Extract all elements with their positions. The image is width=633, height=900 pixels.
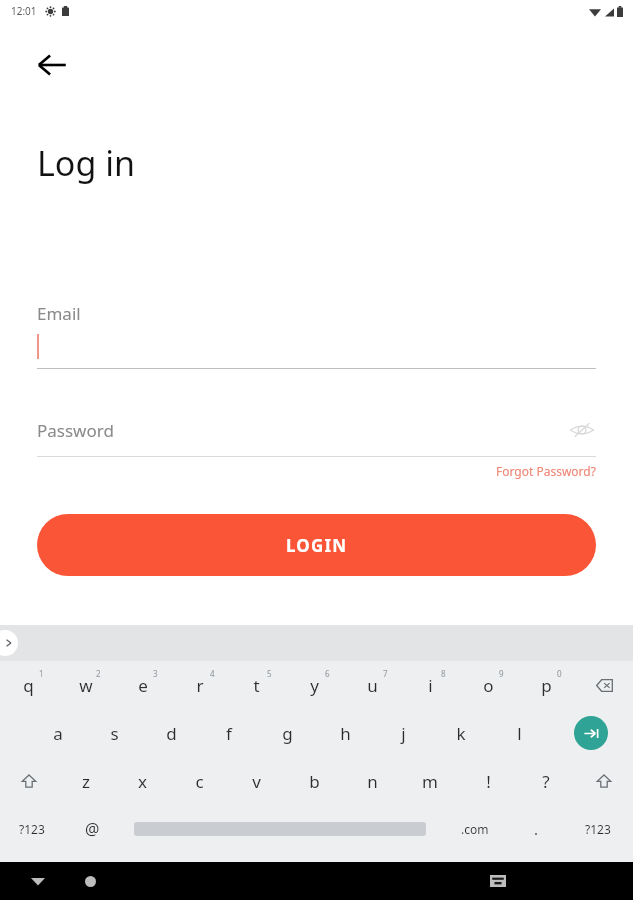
button[interactable]: Shift <box>0 757 57 805</box>
button[interactable]: o <box>459 661 517 709</box>
staticText: g <box>282 722 293 745</box>
staticText: t <box>253 674 260 697</box>
button[interactable]: t <box>228 661 285 709</box>
staticText: o <box>483 674 494 697</box>
button[interactable]: Next <box>548 709 633 757</box>
staticText: 0 <box>557 668 562 679</box>
button[interactable]: .com <box>438 805 511 853</box>
button[interactable]: Forgot Password? <box>496 463 596 479</box>
button[interactable]: c <box>171 757 228 805</box>
button[interactable]: Email <box>37 302 596 369</box>
staticText: ?123 <box>585 821 611 837</box>
staticText: 6 <box>325 668 330 679</box>
staticText: 7 <box>383 668 388 679</box>
staticText: w <box>79 674 93 697</box>
button[interactable]: f <box>200 709 258 757</box>
staticText: p <box>541 674 552 697</box>
staticText: ? <box>542 770 550 793</box>
button[interactable]: p <box>517 661 575 709</box>
button[interactable]: @ <box>64 805 121 853</box>
button[interactable]: Hide keyboard <box>22 865 54 897</box>
staticText: 8 <box>441 668 446 679</box>
button[interactable]: Shift <box>575 757 633 805</box>
staticText: .com <box>461 821 489 837</box>
button[interactable]: More suggestions <box>0 630 18 656</box>
button[interactable]: i <box>401 661 459 709</box>
button[interactable]: Home <box>74 865 106 897</box>
button[interactable]: Show password <box>568 416 596 444</box>
button[interactable]: r <box>171 661 228 709</box>
button[interactable]: m <box>401 757 459 805</box>
staticText: i <box>428 674 433 697</box>
button[interactable]: k <box>432 709 490 757</box>
button[interactable]: u <box>343 661 401 709</box>
staticText: 1 <box>39 668 44 679</box>
button[interactable]: v <box>228 757 285 805</box>
staticText: f <box>226 722 232 745</box>
staticText: ! <box>486 770 491 793</box>
staticText: 5 <box>267 668 272 679</box>
staticText: u <box>367 674 378 697</box>
button[interactable]: Backspace <box>575 661 633 709</box>
staticText: y <box>310 674 319 697</box>
button[interactable]: l <box>490 709 548 757</box>
button[interactable]: Password <box>37 416 596 444</box>
button[interactable]: a <box>29 709 86 757</box>
button[interactable]: y <box>285 661 343 709</box>
staticText: n <box>367 770 378 793</box>
staticText: s <box>110 722 119 745</box>
button[interactable]: Space <box>121 805 438 853</box>
staticText: 2 <box>96 668 101 679</box>
staticText: a <box>53 722 63 745</box>
button[interactable]: Switch keyboard <box>483 866 513 896</box>
staticText: h <box>340 722 351 745</box>
button[interactable]: LOGIN <box>37 514 596 576</box>
button[interactable]: ? <box>517 757 575 805</box>
staticText: r <box>196 674 204 697</box>
button[interactable]: h <box>316 709 374 757</box>
button[interactable]: w <box>57 661 114 709</box>
staticText: 3 <box>153 668 158 679</box>
staticText: Password <box>37 419 114 442</box>
button[interactable]: x <box>114 757 171 805</box>
button[interactable]: d <box>143 709 200 757</box>
staticText: @ <box>85 818 100 840</box>
staticText: 9 <box>499 668 504 679</box>
button[interactable]: Back <box>25 38 79 92</box>
staticText: c <box>195 770 204 793</box>
button[interactable]: z <box>57 757 114 805</box>
staticText: v <box>252 770 261 793</box>
button[interactable]: ?123 <box>562 805 633 853</box>
staticText: k <box>456 722 466 745</box>
staticText: ?123 <box>19 821 45 837</box>
button[interactable]: b <box>285 757 343 805</box>
staticText: j <box>401 722 406 745</box>
button[interactable]: g <box>258 709 316 757</box>
button[interactable]: j <box>374 709 432 757</box>
staticText: z <box>82 770 90 793</box>
staticText: b <box>309 770 320 793</box>
staticText: m <box>422 770 438 793</box>
button[interactable]: e <box>114 661 171 709</box>
staticText: 4 <box>210 668 215 679</box>
staticText: e <box>138 674 148 697</box>
button[interactable]: ! <box>459 757 517 805</box>
button[interactable]: . <box>511 805 562 853</box>
button[interactable]: q <box>0 661 57 709</box>
staticText: . <box>534 819 539 839</box>
staticText: x <box>138 770 147 793</box>
staticText: l <box>517 722 522 745</box>
button[interactable]: n <box>343 757 401 805</box>
button[interactable]: s <box>86 709 143 757</box>
staticText: 12:01 <box>11 4 37 18</box>
button[interactable]: ?123 <box>0 805 64 853</box>
staticText: Log in <box>37 140 135 186</box>
staticText: Email <box>37 302 81 325</box>
staticText: d <box>166 722 177 745</box>
staticText: q <box>23 674 34 697</box>
staticText: LOGIN <box>286 534 348 557</box>
